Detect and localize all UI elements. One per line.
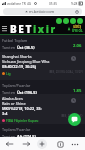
button[interactable]: Action 0 [56,18,62,24]
staticText: ÜYE OL [72,29,83,33]
staticText: 08:40/22:19, 36:26j [2,64,37,69]
button[interactable]: Menu [0,24,9,33]
button[interactable]: BET [10,22,57,36]
button[interactable]: New tab [37,139,47,149]
staticText: Futbol Toplam [2,38,28,43]
staticText: Lig [6,71,11,75]
button[interactable]: Action 2 [70,18,76,24]
staticText: vodafone TR [7,2,26,6]
staticText: Alt (174.5) [17,134,36,137]
button[interactable]: m.betixir.com [3,8,82,15]
staticText: BET [10,22,33,36]
staticText: (MB, 22 EKO, 6F) [61,114,83,118]
staticText: Tanıtım [2,134,17,137]
staticText: 1.85 [73,88,82,94]
staticText: Shanghai Sharks [2,54,32,59]
staticText: GİRİŞ [73,25,82,29]
button[interactable]: Toplam/Puanlar [0,80,85,94]
staticText: 4G [27,2,32,6]
staticText: 2.06 [73,43,82,49]
button[interactable]: Live chat [68,113,81,126]
button[interactable]: GİRİŞ [67,25,83,33]
button[interactable]: Action 3 [77,18,83,24]
staticText: Üst (196.5) [17,90,37,94]
button[interactable]: Forward [19,139,34,149]
button[interactable]: Alaska Aces [0,94,85,124]
button[interactable]: Action 1 [63,18,69,24]
staticText: Rain or Shine [2,101,26,106]
staticText: 05:35 [49,2,58,6]
button[interactable]: Tabs [55,139,65,149]
staticText: m.betixir.com [29,9,55,14]
staticText: Toplam/Puanlar [2,127,31,132]
staticText: Sichuan Jinqiang Blue Wha [2,59,50,64]
staticText: Tanıtım [2,90,17,94]
staticText: (MB, 2X ERG:GOAL, 1X/2F) [49,70,83,74]
staticText: 3:4 [2,111,8,116]
staticText: Alaska Aces [2,96,23,101]
staticText: %28 [71,2,78,6]
button[interactable]: Toplam/Puanlar [0,124,85,137]
button[interactable]: Back [2,139,17,149]
button[interactable]: Futbol Toplam [0,35,85,52]
button[interactable]: More options [70,139,80,149]
staticText: Tanıtım [2,45,17,50]
staticText: Toplam/Puanlar [2,83,31,88]
staticText: FIBA Filipinler Kupası [6,118,39,122]
staticText: ixir [33,22,57,36]
staticText: Üst (36.5) [17,45,35,50]
button[interactable]: Shanghai Sharks [0,52,85,80]
staticText: MKS%2218, 10:22, 33: [2,106,42,111]
